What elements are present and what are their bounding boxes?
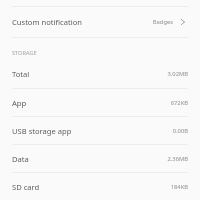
- staticText: 672KB: [170, 99, 188, 107]
- staticText: 2.36MB: [167, 155, 188, 163]
- button[interactable]: Custom notification: [0, 7, 200, 37]
- button[interactable]: SD card: [0, 173, 200, 200]
- staticText: Data: [12, 154, 29, 164]
- staticText: App: [12, 98, 27, 108]
- staticText: 184KB: [170, 183, 188, 191]
- staticText: 3.02MB: [167, 70, 188, 78]
- button[interactable]: USB storage app: [0, 117, 200, 144]
- staticText: Badges: [152, 18, 173, 26]
- staticText: Total: [12, 69, 30, 79]
- button[interactable]: Data: [0, 145, 200, 172]
- staticText: SD card: [12, 182, 40, 192]
- other: Open Badges settings: [178, 17, 188, 27]
- button[interactable]: App: [0, 89, 200, 116]
- staticText: 0.00B: [172, 127, 188, 135]
- staticText: USB storage app: [12, 126, 72, 136]
- staticText: Custom notification: [12, 17, 82, 27]
- staticText: STORAGE: [12, 49, 37, 57]
- button[interactable]: Total: [0, 60, 200, 88]
